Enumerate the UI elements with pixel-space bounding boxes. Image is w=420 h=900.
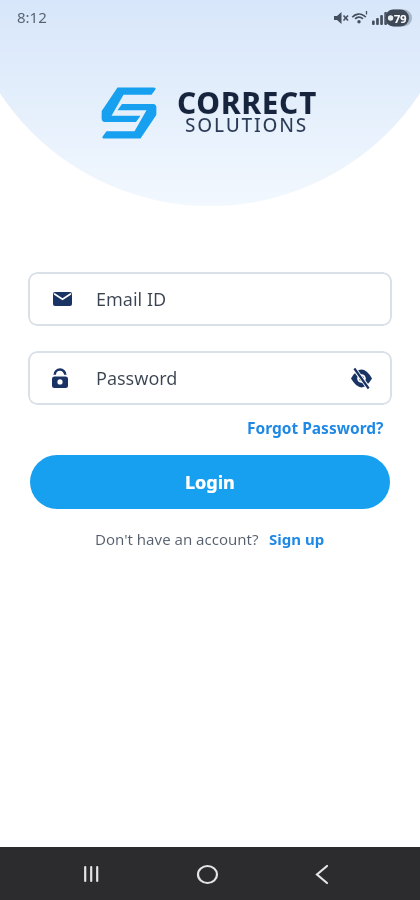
- button[interactable]: Email ID: [28, 272, 392, 326]
- button[interactable]: Sign up: [269, 529, 325, 549]
- button[interactable]: [189, 856, 225, 892]
- staticText: SOLUTIONS: [185, 112, 309, 138]
- button[interactable]: [304, 856, 340, 892]
- button[interactable]: Password: [28, 351, 392, 405]
- staticText: 79: [394, 11, 407, 26]
- staticText: Forgot Password?: [247, 417, 384, 438]
- button[interactable]: [343, 360, 379, 396]
- staticText: Login: [185, 470, 235, 495]
- staticText: CORRECT: [177, 82, 318, 123]
- button[interactable]: Forgot Password?: [247, 417, 384, 438]
- staticText: Email ID: [96, 287, 167, 312]
- staticText: Password: [96, 366, 178, 391]
- staticText: 8:12: [17, 7, 47, 27]
- staticText: Don't have an account?: [95, 529, 259, 549]
- staticText: Sign up: [269, 529, 325, 549]
- button[interactable]: [73, 856, 109, 892]
- button[interactable]: Login: [30, 455, 390, 509]
